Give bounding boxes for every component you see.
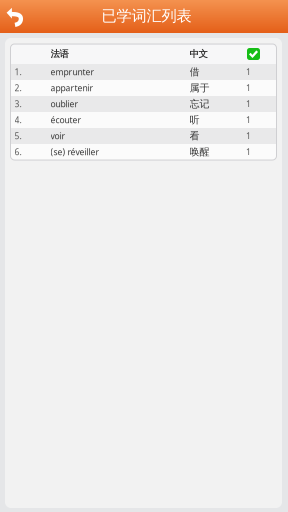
staticText: (se) réveiller (50, 146, 99, 158)
staticText: 借 (189, 66, 199, 78)
button[interactable]: 4. (10, 112, 276, 128)
button[interactable]: 3. (10, 96, 276, 112)
staticText: 1 (246, 146, 251, 158)
staticText: 1 (246, 66, 251, 78)
staticText: 1. (14, 66, 21, 78)
staticText: 4. (14, 114, 21, 126)
staticText: 属于 (189, 82, 209, 94)
staticText: appartenir (50, 82, 93, 94)
staticText: écouter (50, 114, 81, 126)
staticText: 已学词汇列表 (101, 6, 191, 25)
button[interactable]: 6. (10, 144, 276, 160)
staticText: 1 (246, 114, 251, 126)
staticText: 法语 (50, 48, 68, 60)
staticText: 看 (189, 130, 199, 142)
staticText: oublier (50, 98, 78, 110)
button[interactable]: 1. (10, 64, 276, 80)
staticText: 忘记 (189, 98, 209, 110)
button[interactable]: Select all (229, 44, 267, 64)
staticText: 5. (14, 130, 21, 142)
staticText: 2. (14, 82, 21, 94)
staticText: 中文 (189, 48, 207, 60)
staticText: 1 (246, 130, 251, 142)
staticText: voir (50, 130, 65, 142)
staticText: 6. (14, 146, 21, 158)
button[interactable]: Back (0, 0, 30, 33)
button[interactable]: 5. (10, 128, 276, 144)
staticText: 1 (246, 98, 251, 110)
staticText: 听 (189, 114, 199, 126)
button[interactable]: 2. (10, 80, 276, 96)
staticText: 1 (246, 82, 251, 94)
staticText: 3. (14, 98, 21, 110)
staticText: 唤醒 (189, 146, 209, 158)
staticText: emprunter (50, 66, 94, 78)
